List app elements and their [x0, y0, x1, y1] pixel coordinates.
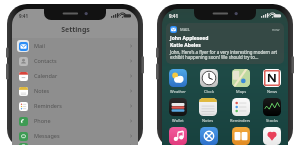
staticText: John, Here's a flyer for a very interest… — [170, 49, 278, 61]
button[interactable]: iTunes — [200, 127, 218, 145]
staticText: Wallet — [172, 118, 184, 123]
staticText: 9:41 — [19, 13, 28, 19]
other: Music — [169, 127, 187, 145]
staticText: Mail — [34, 42, 45, 49]
staticText: Messages — [34, 132, 60, 139]
button[interactable]: Calendar — [12, 68, 138, 83]
staticText: Clock — [204, 89, 215, 94]
button[interactable]: News — [263, 69, 281, 94]
staticText: Calendar — [34, 72, 58, 79]
staticText: Maps — [236, 89, 247, 94]
staticText: MAIL — [180, 27, 190, 32]
staticText: John Appleseed — [170, 35, 209, 42]
other: Weather — [169, 69, 187, 87]
button[interactable]: Wallet — [169, 98, 187, 123]
staticText: Reminders — [34, 102, 62, 109]
other: Stocks — [263, 98, 281, 116]
button[interactable]: Health — [263, 127, 281, 145]
other: Wallet — [169, 98, 187, 116]
button[interactable]: Stocks — [263, 98, 281, 123]
staticText: Contacts — [34, 57, 57, 64]
staticText: 9:41 — [169, 13, 178, 19]
other: Reminders — [232, 98, 250, 116]
button[interactable]: Reminders — [12, 98, 138, 113]
button[interactable]: Notes — [199, 98, 217, 123]
other: Books — [232, 127, 250, 145]
button[interactable]: Music — [169, 127, 187, 145]
staticText: News — [267, 89, 278, 94]
staticText: Settings — [61, 25, 90, 35]
button[interactable]: Messages — [12, 128, 138, 143]
staticText: Notes — [34, 87, 50, 94]
button[interactable]: Weather — [169, 69, 187, 94]
staticText: Reminders — [230, 118, 251, 123]
other: Maps — [232, 69, 250, 87]
button[interactable]: Phone — [12, 113, 138, 128]
staticText: Phone — [34, 117, 51, 124]
button[interactable]: Mail — [12, 38, 138, 53]
other: Clock — [200, 69, 218, 87]
button[interactable]: Notes — [12, 83, 138, 98]
other: News — [263, 69, 281, 87]
staticText: now — [272, 27, 280, 32]
button[interactable]: Clock — [200, 69, 218, 94]
other: iTunes — [200, 127, 218, 145]
staticText: Stocks — [266, 118, 279, 123]
other: Health — [263, 127, 281, 145]
staticText: Katie Abeles — [170, 42, 201, 49]
button[interactable]: Contacts — [12, 53, 138, 68]
button[interactable]: Reminders — [230, 98, 251, 123]
button[interactable]: MAIL — [166, 23, 284, 64]
button[interactable]: Maps — [232, 69, 250, 94]
button[interactable]: Books — [232, 127, 250, 145]
button[interactable]: FaceTime — [12, 143, 138, 145]
other: Notes — [199, 98, 217, 116]
staticText: Notes — [202, 118, 214, 123]
staticText: Weather — [170, 89, 186, 94]
